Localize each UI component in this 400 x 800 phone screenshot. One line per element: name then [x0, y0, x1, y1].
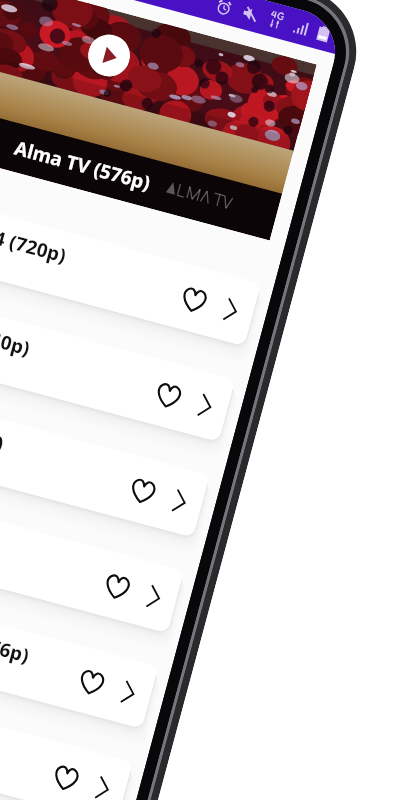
button[interactable]: Open channel: [134, 577, 173, 616]
button[interactable]: Add to favourites: [69, 660, 113, 704]
staticText: Radio Televizija Srpske (576p): [0, 572, 32, 669]
button[interactable]: Open channel: [108, 672, 147, 712]
button[interactable]: Play: [83, 30, 135, 81]
button[interactable]: Open channel: [160, 481, 199, 520]
button[interactable]: Add to favourites: [146, 373, 190, 417]
button[interactable]: Add to favourites: [172, 278, 216, 322]
button[interactable]: Balkan Trip TV (540p): [0, 271, 235, 442]
button[interactable]: Kanal 3 (576p): [0, 653, 133, 800]
staticText: Alfa TV Skopje (576p): [0, 381, 7, 457]
staticText: Face TV Kanal 4 (720p): [0, 190, 69, 269]
button[interactable]: Elta TV (576p): [0, 462, 184, 633]
button[interactable]: Hayat Folk (576p): [0, 749, 107, 800]
button[interactable]: Add to favourites: [120, 469, 164, 513]
button[interactable]: Open channel: [83, 768, 122, 800]
button[interactable]: Alfa TV Skopje (576p): [0, 366, 210, 538]
staticText: Alma TV (576p): [12, 135, 154, 196]
button[interactable]: Add to favourites: [43, 756, 88, 800]
button[interactable]: Play: [0, 0, 317, 240]
staticText: Balkan Trip TV (540p): [0, 285, 34, 362]
button[interactable]: Face TV Kanal 4 (720p): [0, 175, 261, 346]
button[interactable]: Add to favourites: [95, 565, 139, 609]
button[interactable]: Radio Televizija Srpske (576p): [0, 557, 159, 729]
button[interactable]: Open channel: [185, 386, 224, 425]
button[interactable]: Open channel: [211, 290, 250, 329]
